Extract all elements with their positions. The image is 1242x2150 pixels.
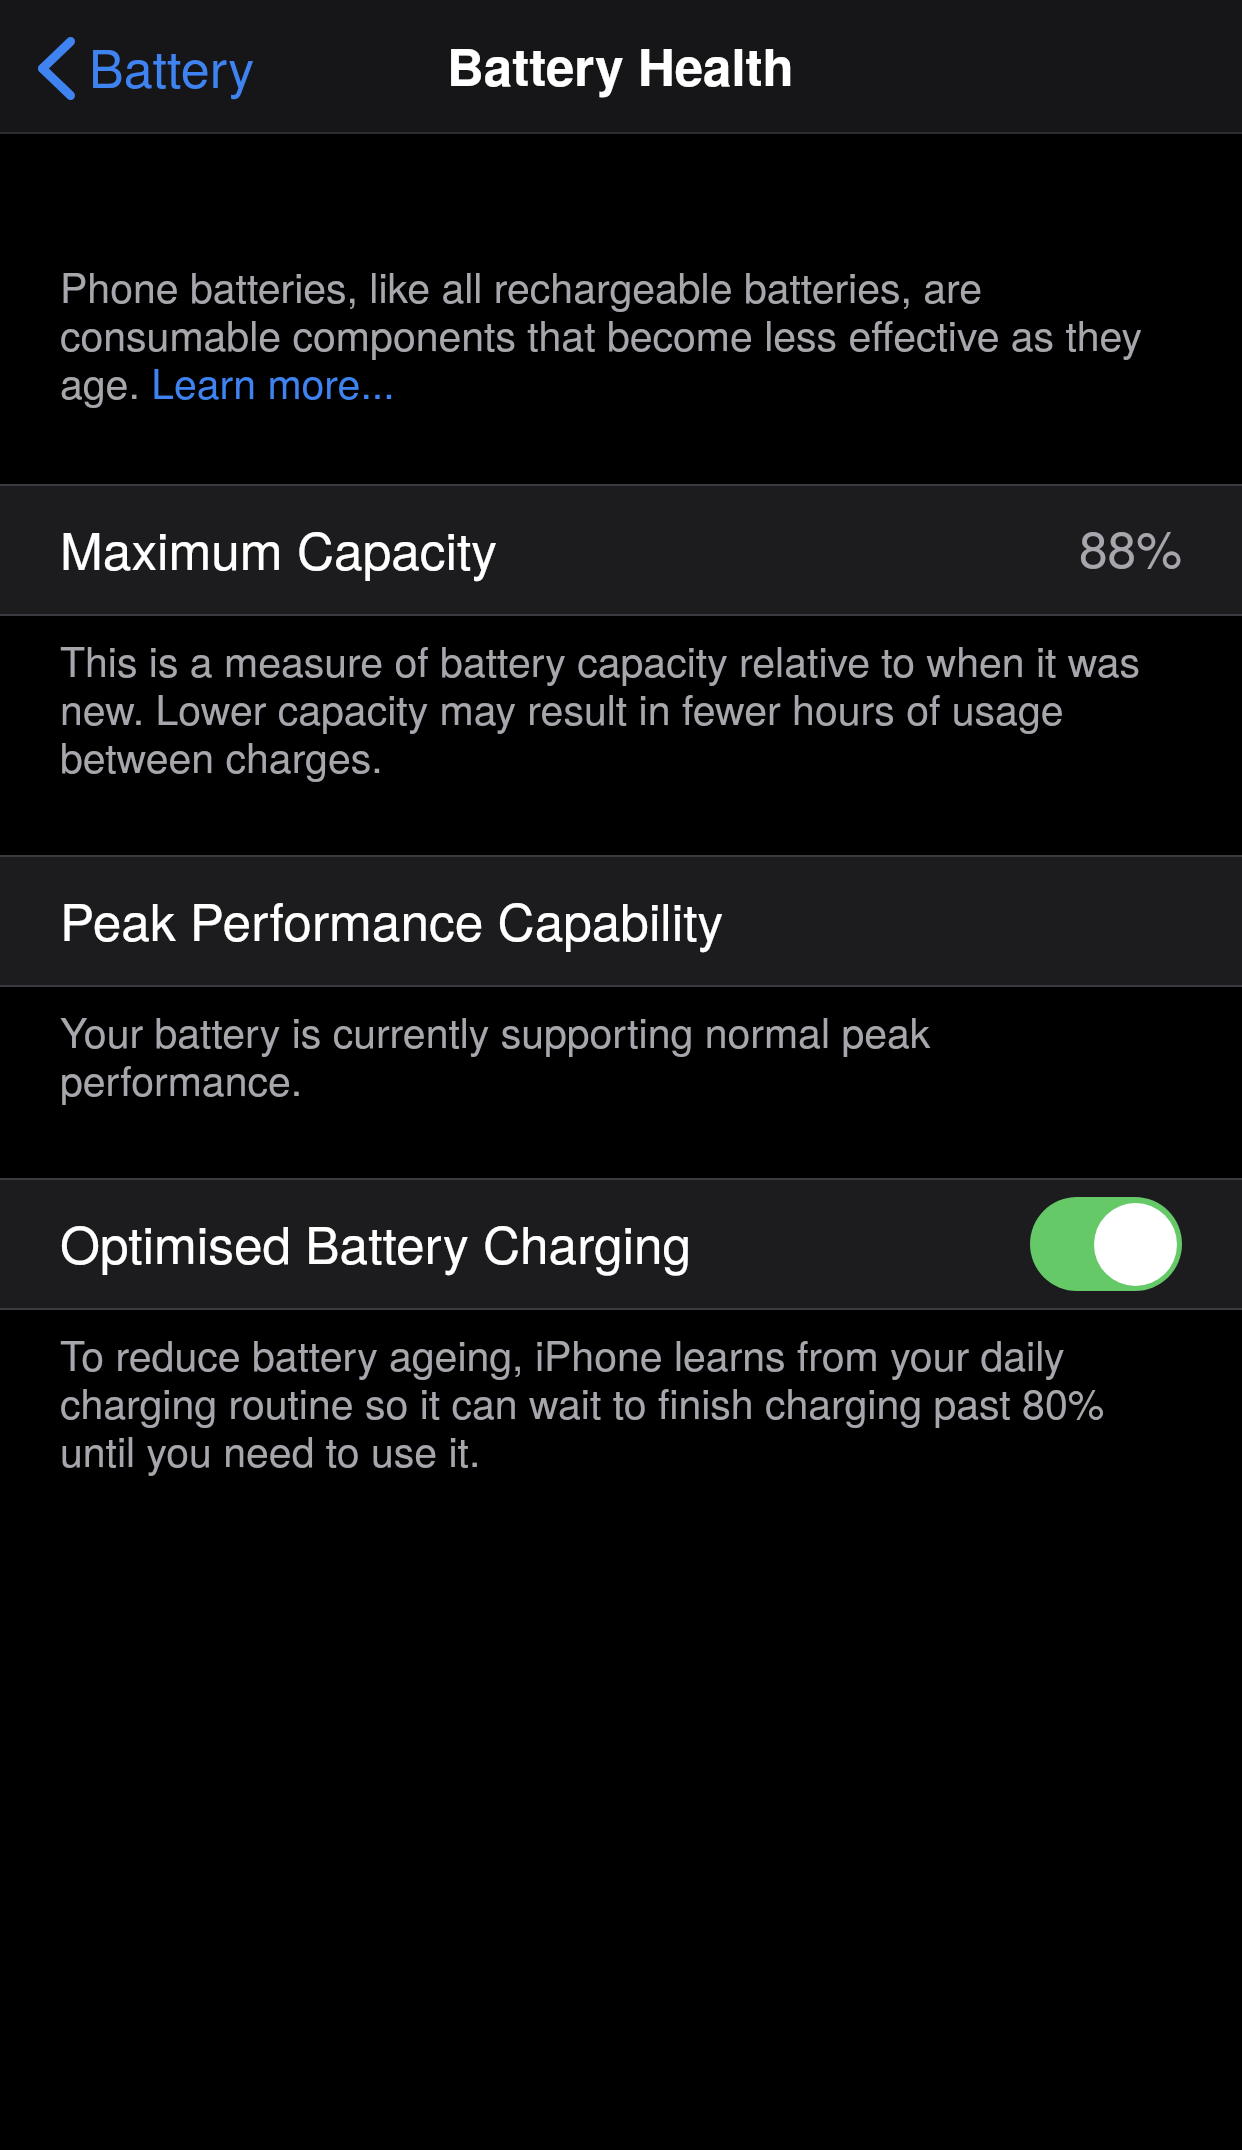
staticText: Battery Health xyxy=(447,29,794,102)
button[interactable]: Optimised Battery Charging xyxy=(0,1178,1242,1310)
staticText: Your battery is currently supporting nor… xyxy=(60,1009,1182,1105)
button[interactable]: Back to Battery xyxy=(14,14,284,120)
staticText: Peak Performance Capability xyxy=(60,882,724,956)
staticText: 88% xyxy=(1079,509,1182,583)
button[interactable]: Peak Performance Capability xyxy=(0,855,1242,987)
button[interactable]: Optimised Battery Charging, on xyxy=(1030,1197,1182,1291)
button[interactable]: Maximum Capacity xyxy=(0,484,1242,616)
staticText: Optimised Battery Charging xyxy=(60,1205,692,1279)
staticText: Maximum Capacity xyxy=(60,511,497,585)
staticText: To reduce battery ageing, iPhone learns … xyxy=(60,1332,1182,1476)
staticText: Battery xyxy=(89,28,255,102)
button[interactable]: Learn more about battery health xyxy=(148,359,386,409)
staticText: Phone batteries, like all rechargeable b… xyxy=(60,264,1182,408)
staticText: This is a measure of battery capacity re… xyxy=(60,638,1182,782)
